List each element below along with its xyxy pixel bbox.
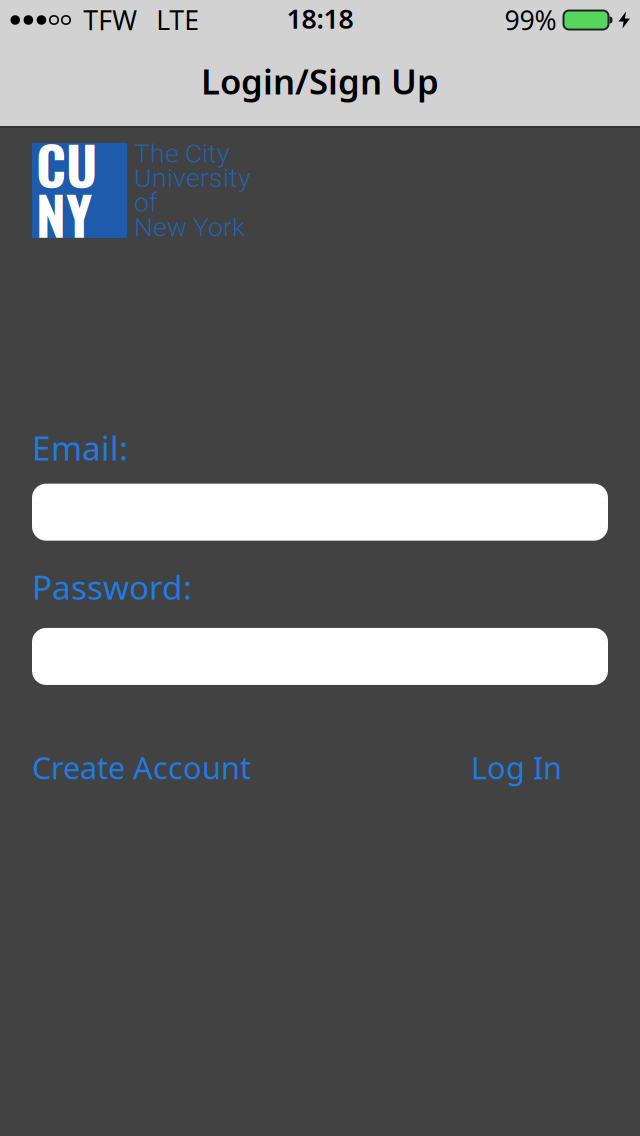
button[interactable]: Log In <box>471 747 562 788</box>
staticText: Email: <box>32 425 128 470</box>
staticText: Create Account <box>32 747 251 788</box>
staticText: The City <box>134 138 230 169</box>
staticText: of <box>134 187 158 218</box>
staticText: CU <box>36 124 97 203</box>
staticText: University <box>134 162 251 194</box>
staticText: Login/Sign Up <box>201 58 439 104</box>
staticText: Password: <box>32 565 192 609</box>
staticText: 99% <box>504 2 556 38</box>
staticText: TFW <box>83 2 137 38</box>
staticText: 18:18 <box>286 1 353 36</box>
staticText: NY <box>36 174 92 253</box>
staticText: New York <box>134 211 245 243</box>
button[interactable]: Create Account <box>32 747 251 788</box>
staticText: Log In <box>471 747 562 788</box>
staticText: LTE <box>156 2 199 38</box>
